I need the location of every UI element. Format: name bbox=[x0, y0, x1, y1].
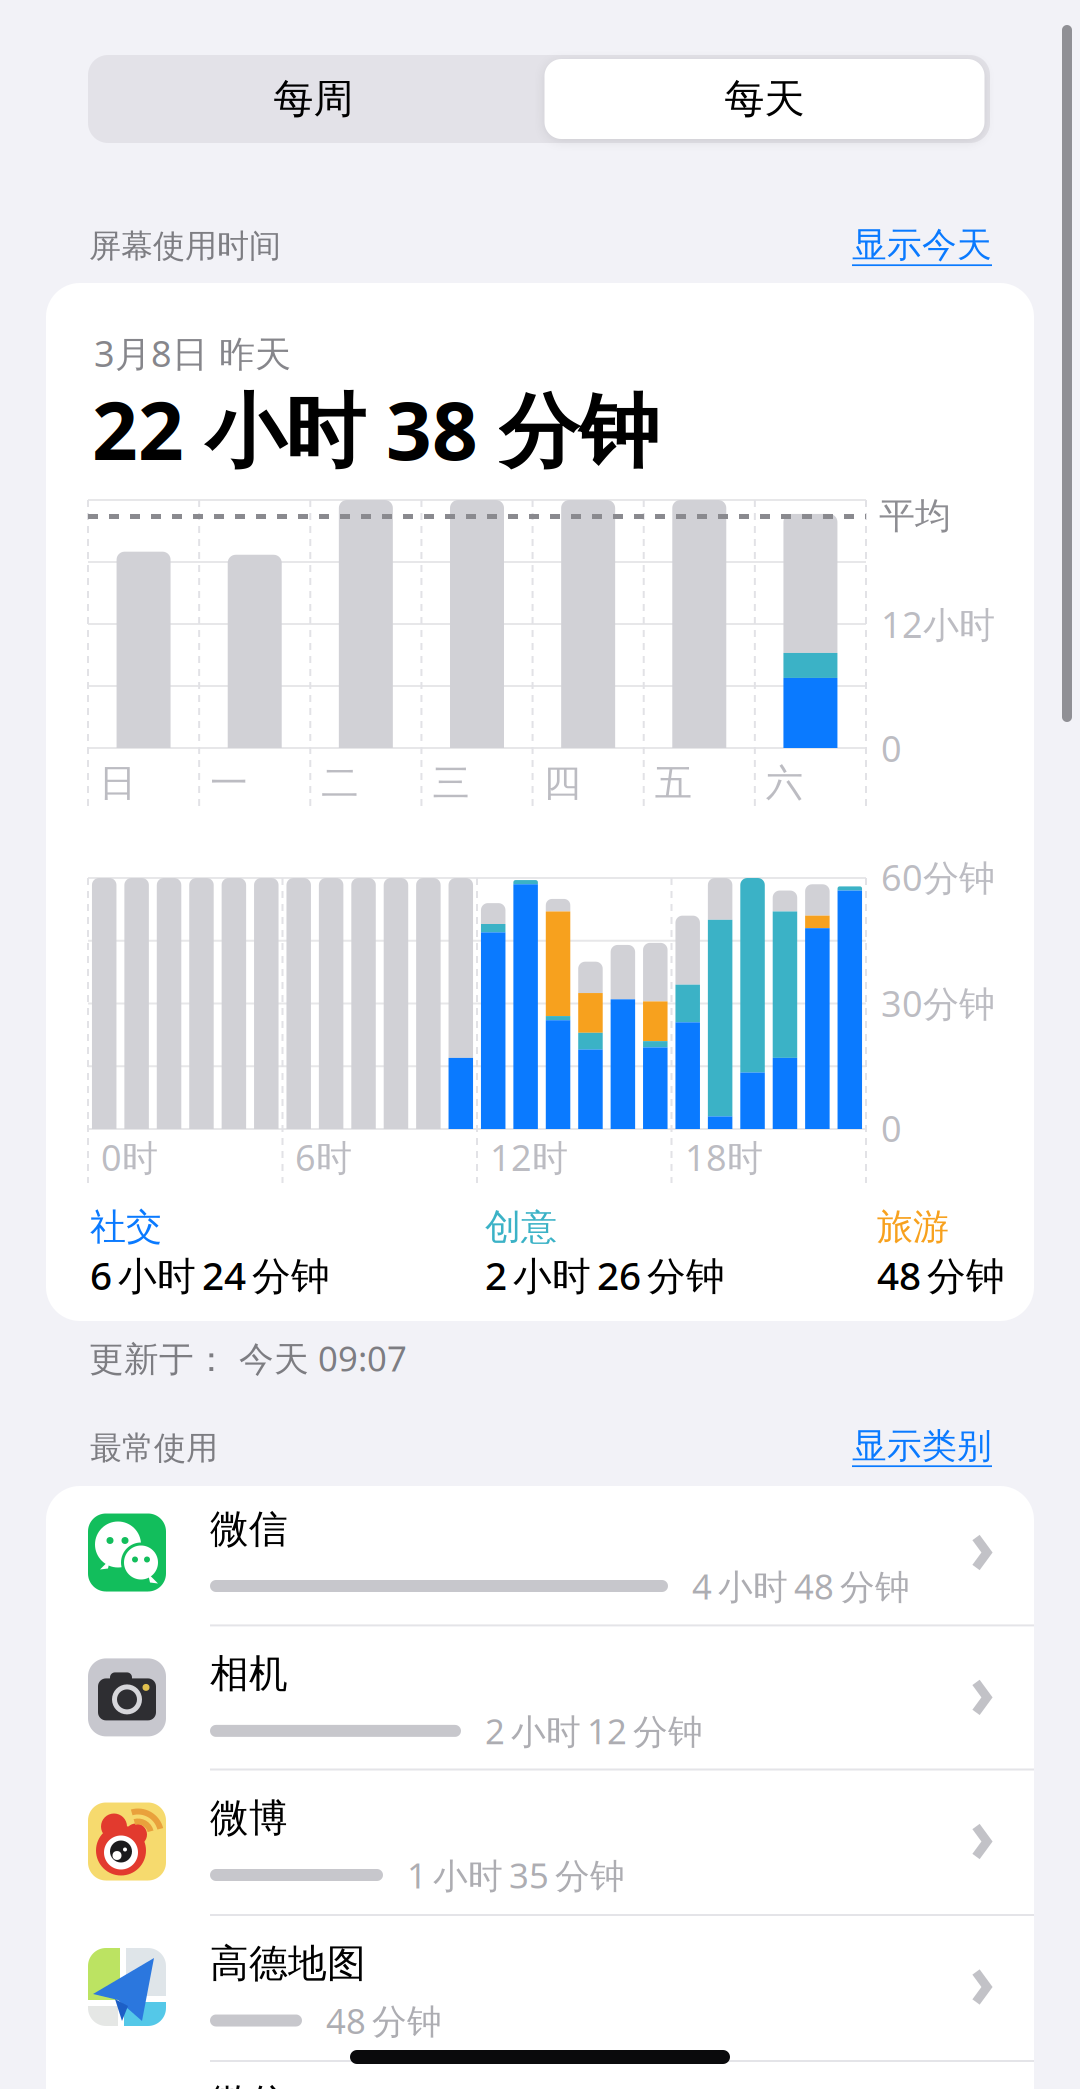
staticText: 社交 bbox=[90, 1205, 162, 1249]
staticText: 高德地图 bbox=[210, 1940, 366, 1987]
staticText: 微信 bbox=[210, 1505, 288, 1553]
staticText: 3月8日 昨天 bbox=[94, 329, 291, 377]
staticText: 30分钟 bbox=[881, 979, 995, 1027]
staticText: 创意 bbox=[485, 1205, 557, 1249]
staticText: 2 小时 12 分钟 bbox=[485, 1708, 703, 1754]
staticText: 4 小时 48 分钟 bbox=[692, 1563, 910, 1609]
staticText: 四 bbox=[544, 760, 581, 806]
staticText: 旅游 bbox=[877, 1205, 949, 1249]
staticText: 12小时 bbox=[881, 600, 995, 648]
staticText: 0 bbox=[881, 1104, 902, 1152]
staticText: 18时 bbox=[685, 1133, 763, 1181]
button[interactable]: 相机 bbox=[46, 1625, 1034, 1770]
staticText: 每周 bbox=[273, 74, 353, 123]
staticText: 二 bbox=[321, 760, 358, 806]
button[interactable]: 每周 bbox=[88, 55, 539, 143]
button[interactable]: 微信 bbox=[46, 1480, 1034, 1625]
staticText: 0时 bbox=[101, 1133, 158, 1181]
button[interactable]: 显示今天 bbox=[692, 224, 992, 266]
staticText: 相机 bbox=[210, 1650, 288, 1698]
staticText: 微博 bbox=[210, 1794, 288, 1842]
staticText: 6 小时 24 分钟 bbox=[90, 1249, 330, 1301]
staticText: 显示今天 bbox=[852, 224, 992, 266]
staticText: 一 bbox=[210, 760, 247, 806]
staticText: 22 小时 38 分钟 bbox=[92, 376, 659, 482]
staticText: 48 分钟 bbox=[877, 1249, 1005, 1301]
button[interactable]: 显示类别 bbox=[692, 1425, 992, 1467]
staticText: 最常使用 bbox=[90, 1428, 218, 1468]
staticText: 0 bbox=[881, 724, 902, 772]
staticText: 1 小时 35 分钟 bbox=[407, 1852, 625, 1898]
button[interactable]: 高德地图 bbox=[46, 1915, 1034, 2060]
button[interactable]: 每天 bbox=[539, 55, 990, 143]
staticText: 平均 bbox=[879, 494, 951, 538]
staticText: 五 bbox=[655, 760, 692, 806]
staticText: 三 bbox=[432, 760, 469, 806]
staticText: 48 分钟 bbox=[326, 1997, 442, 2043]
staticText: 更新于： 今天 09:07 bbox=[89, 1335, 407, 1381]
staticText: 日 bbox=[99, 760, 136, 806]
staticText: 2 小时 26 分钟 bbox=[485, 1249, 725, 1301]
staticText: 微信 bbox=[210, 2079, 288, 2089]
staticText: 6时 bbox=[295, 1133, 352, 1181]
staticText: 六 bbox=[766, 760, 803, 806]
staticText: 60分钟 bbox=[881, 853, 995, 901]
staticText: 显示类别 bbox=[852, 1425, 992, 1467]
staticText: 每天 bbox=[724, 74, 804, 123]
staticText: 12时 bbox=[490, 1133, 568, 1181]
staticText: 屏幕使用时间 bbox=[89, 226, 281, 266]
button[interactable]: 微博 bbox=[46, 1769, 1034, 1914]
